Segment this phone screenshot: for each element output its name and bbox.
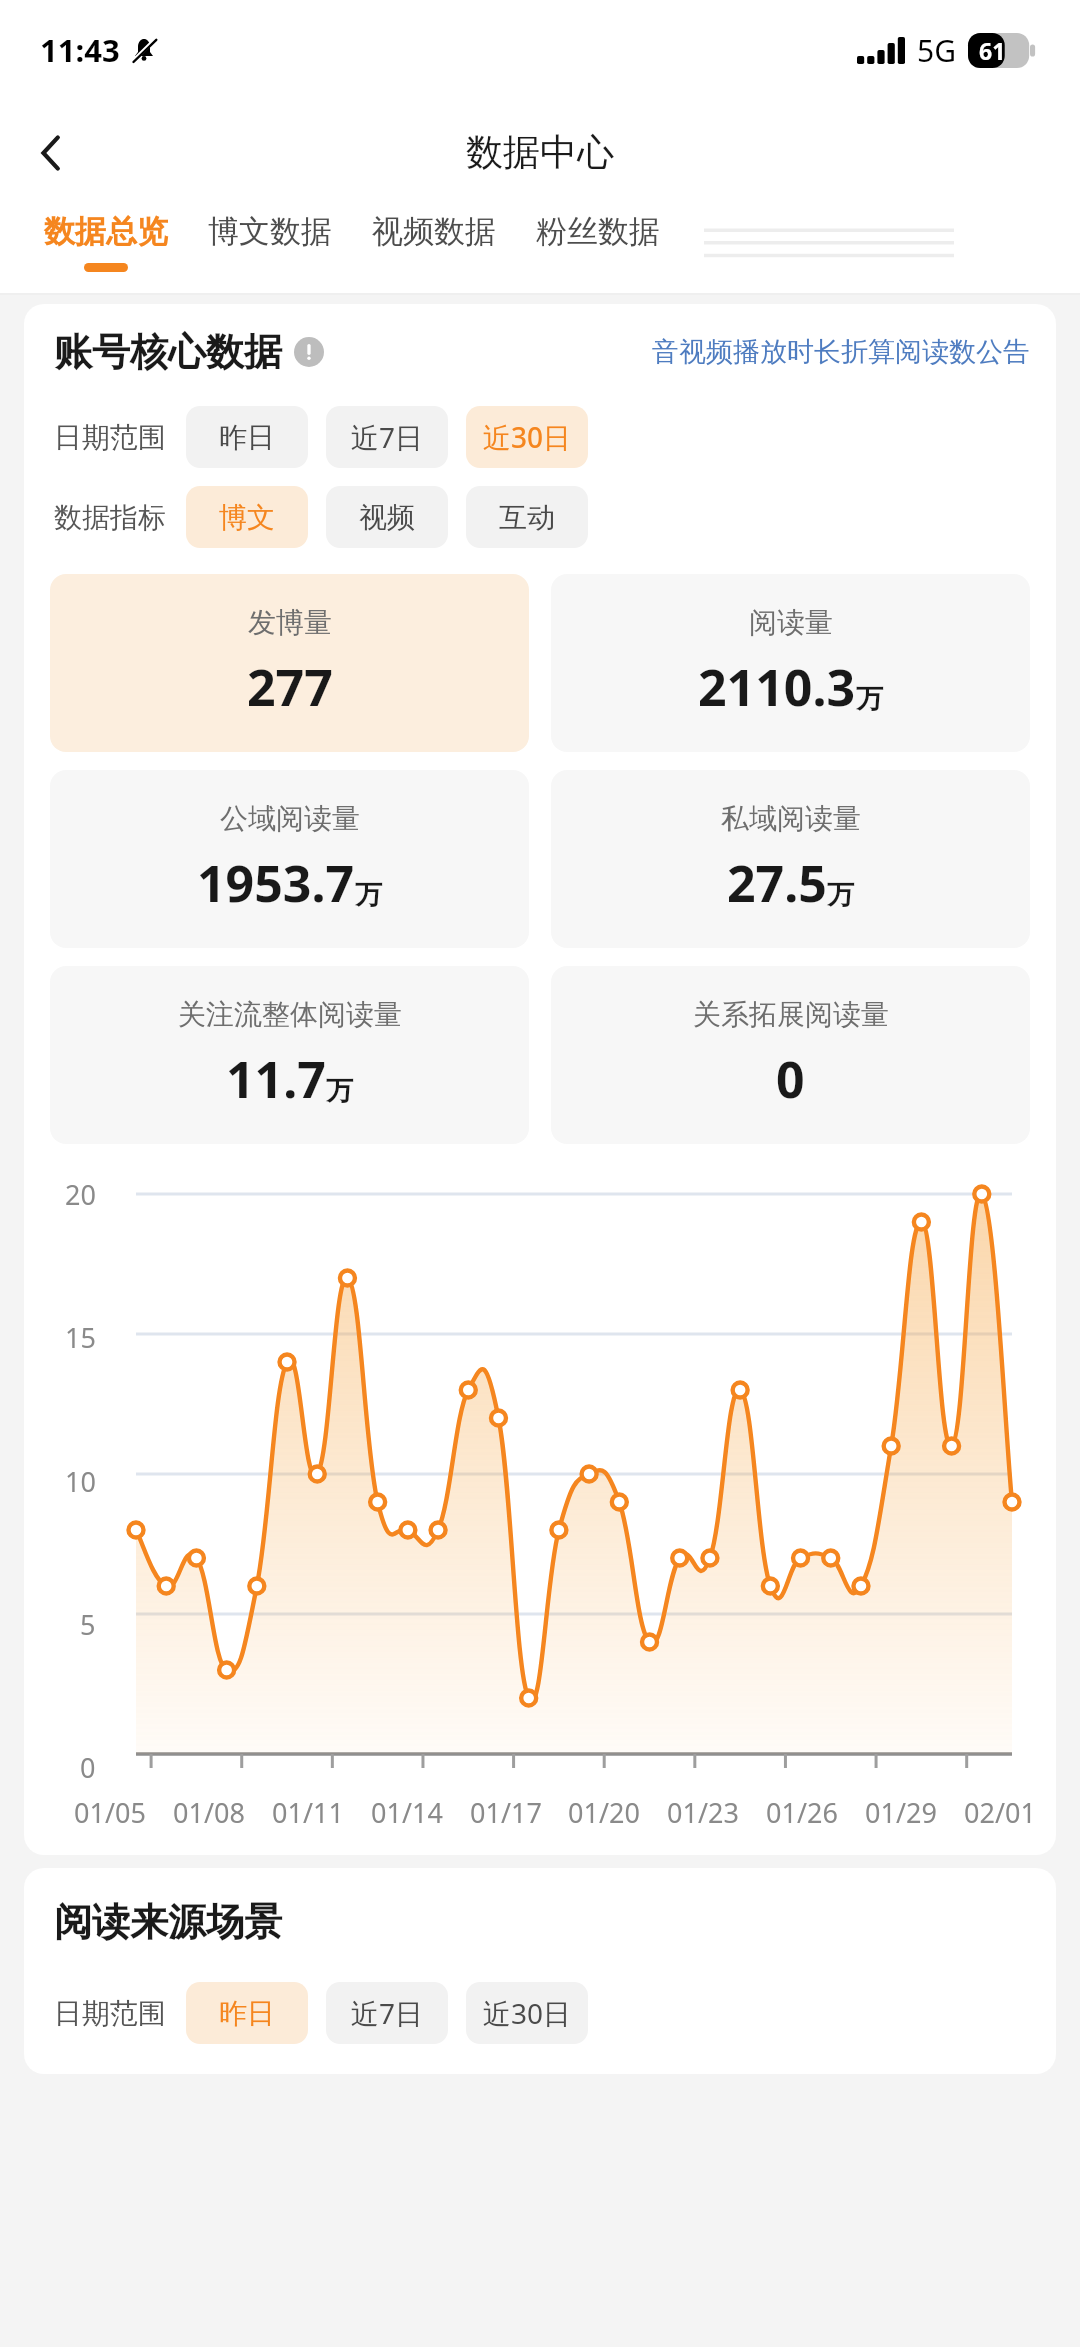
staticText: 15 bbox=[65, 1319, 96, 1356]
staticText: 0 bbox=[776, 1045, 805, 1113]
button[interactable]: 昨日 bbox=[186, 1982, 308, 2044]
staticText: 博文 bbox=[219, 500, 275, 535]
button[interactable]: 音视频播放时长折算阅读数公告 bbox=[652, 335, 1030, 369]
staticText: 粉丝数据 bbox=[536, 212, 660, 251]
staticText: 01/20 bbox=[568, 1794, 640, 1831]
button[interactable]: 关注流整体阅读量 bbox=[50, 966, 529, 1144]
staticText: 昨日 bbox=[219, 1996, 275, 2031]
staticText: 万 bbox=[355, 878, 382, 912]
staticText: 01/26 bbox=[766, 1794, 838, 1831]
staticText: 01/14 bbox=[371, 1794, 443, 1831]
staticText: 10 bbox=[65, 1463, 96, 1500]
staticText: 阅读量 bbox=[749, 605, 833, 640]
button[interactable]: 博文数据 bbox=[188, 205, 352, 295]
button[interactable]: 公域阅读量 bbox=[50, 770, 529, 948]
staticText: 近7日 bbox=[351, 1994, 424, 2032]
button[interactable]: 近7日 bbox=[326, 406, 448, 468]
button[interactable]: 视频 bbox=[326, 486, 448, 548]
button[interactable]: 视频数据 bbox=[352, 205, 516, 295]
button[interactable]: 近7日 bbox=[326, 1982, 448, 2044]
staticText: 5 bbox=[80, 1606, 96, 1643]
staticText: 61 bbox=[979, 35, 1006, 66]
staticText: 发博量 bbox=[248, 605, 332, 640]
button[interactable]: 近30日 bbox=[466, 406, 588, 468]
staticText: 近30日 bbox=[483, 418, 572, 456]
staticText: 关注流整体阅读量 bbox=[178, 997, 402, 1032]
staticText: 昨日 bbox=[219, 420, 275, 455]
staticText: 日期范围 bbox=[54, 1996, 166, 2031]
button[interactable]: 私域阅读量 bbox=[551, 770, 1030, 948]
staticText: 万 bbox=[326, 1074, 353, 1108]
staticText: 数据指标 bbox=[54, 500, 166, 535]
staticText: 277 bbox=[247, 653, 333, 721]
staticText: 近30日 bbox=[483, 1994, 572, 2032]
staticText: 1953.7 bbox=[197, 849, 355, 917]
staticText: 01/23 bbox=[667, 1794, 739, 1831]
staticText: 互动 bbox=[499, 500, 555, 535]
button[interactable]: 近30日 bbox=[466, 1982, 588, 2044]
staticText: 01/05 bbox=[74, 1794, 146, 1831]
staticText: 01/11 bbox=[272, 1794, 344, 1831]
button[interactable]: 关系拓展阅读量 bbox=[551, 966, 1030, 1144]
staticText: 02/01 bbox=[964, 1794, 1036, 1831]
staticText: 日期范围 bbox=[54, 420, 166, 455]
staticText: 5G bbox=[917, 30, 956, 71]
staticText: 01/08 bbox=[173, 1794, 245, 1831]
button[interactable]: 阅读量 bbox=[551, 574, 1030, 752]
button[interactable]: Info bbox=[294, 337, 324, 367]
staticText: 私域阅读量 bbox=[721, 801, 861, 836]
staticText: 11:43 bbox=[40, 29, 120, 71]
staticText: 账号核心数据 bbox=[54, 328, 282, 376]
staticText: 01/29 bbox=[865, 1794, 937, 1831]
button[interactable]: 粉丝数据 bbox=[516, 205, 680, 295]
staticText: 数据中心 bbox=[466, 129, 614, 176]
button[interactable]: 发博量 bbox=[50, 574, 529, 752]
button[interactable]: 互动 bbox=[466, 486, 588, 548]
staticText: 近7日 bbox=[351, 418, 424, 456]
staticText: 20 bbox=[65, 1176, 96, 1213]
staticText: 万 bbox=[827, 878, 854, 912]
staticText: 博文数据 bbox=[208, 212, 332, 251]
staticText: 阅读来源场景 bbox=[54, 1898, 282, 1946]
staticText: 0 bbox=[80, 1749, 96, 1786]
staticText: 11.7 bbox=[226, 1045, 326, 1113]
staticText: 01/17 bbox=[470, 1794, 542, 1831]
staticText: 公域阅读量 bbox=[220, 801, 360, 836]
staticText: 2110.3 bbox=[698, 653, 856, 721]
staticText: 数据总览 bbox=[44, 212, 168, 251]
staticText: 关系拓展阅读量 bbox=[693, 997, 889, 1032]
button[interactable]: 数据总览 bbox=[24, 205, 188, 295]
staticText: 27.5 bbox=[727, 849, 827, 917]
button[interactable]: 昨日 bbox=[186, 406, 308, 468]
button[interactable]: 博文 bbox=[186, 486, 308, 548]
staticText: 视频数据 bbox=[372, 212, 496, 251]
staticText: 万 bbox=[856, 682, 883, 716]
staticText: 视频 bbox=[359, 500, 415, 535]
button[interactable]: Back bbox=[12, 114, 90, 192]
